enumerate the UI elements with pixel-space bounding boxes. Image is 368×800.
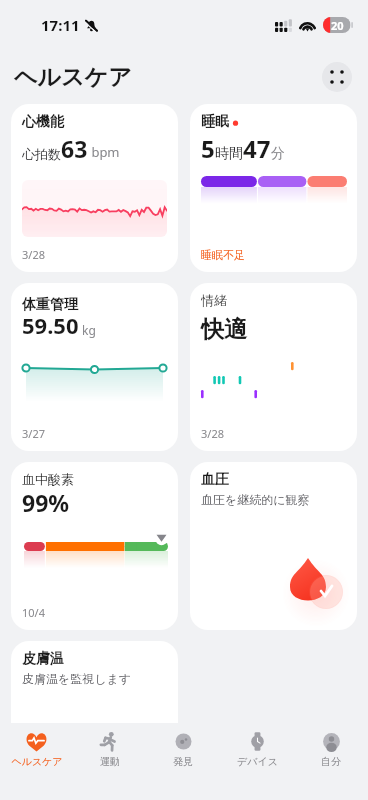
staticText: 20 <box>331 18 344 33</box>
staticText: 自分 <box>321 755 341 768</box>
staticText: 3/28 <box>22 247 45 262</box>
button[interactable]: 心機能 <box>11 104 178 272</box>
button[interactable]: 発見 <box>146 723 220 800</box>
button[interactable]: デバイス <box>220 723 294 800</box>
button[interactable]: 体重管理 <box>11 283 178 451</box>
button[interactable]: 血中酸素 <box>11 462 178 630</box>
staticText: 63 <box>61 133 88 164</box>
button[interactable]: 睡眠 <box>190 104 357 272</box>
staticText: 発見 <box>173 755 193 768</box>
staticText: 分 <box>271 145 285 163</box>
staticText: 情緒 <box>201 292 227 308</box>
staticText: 体重管理 <box>22 296 78 314</box>
staticText: 血圧 <box>201 471 229 489</box>
staticText: bpm <box>88 143 120 161</box>
staticText: 皮膚温 <box>22 650 64 668</box>
staticText: 10/4 <box>22 605 45 620</box>
staticText: kg <box>79 322 96 338</box>
button[interactable]: 情緒 <box>190 283 357 451</box>
staticText: 血圧を継続的に観察 <box>201 492 310 507</box>
button[interactable]: 皮膚温 <box>11 641 178 723</box>
staticText: 3/27 <box>22 426 45 441</box>
staticText: 3/28 <box>201 426 224 441</box>
button[interactable]: ヘルスケア <box>0 723 73 800</box>
staticText: 5 <box>201 132 215 165</box>
staticText: 心拍数 <box>22 146 61 162</box>
button[interactable]: 血圧 <box>190 462 357 630</box>
staticText: 睡眠不足 <box>201 248 245 262</box>
staticText: 47 <box>243 132 271 165</box>
staticText: 快適 <box>201 315 247 344</box>
button[interactable]: 運動 <box>73 723 146 800</box>
staticText: 皮膚温を監視します <box>22 671 132 686</box>
staticText: 心機能 <box>22 113 64 131</box>
staticText: 血中酸素 <box>22 471 74 487</box>
staticText: 運動 <box>100 755 120 768</box>
staticText: 59.50 <box>22 310 79 340</box>
staticText: 時間 <box>215 145 243 163</box>
staticText: デバイス <box>237 755 278 768</box>
staticText: ヘルスケア <box>14 63 132 92</box>
staticText: 99% <box>22 487 70 518</box>
staticText: 睡眠 <box>201 113 229 131</box>
staticText: ヘルスケア <box>11 755 63 768</box>
button[interactable]: More options <box>322 62 352 92</box>
staticText: 17:11 <box>41 15 80 35</box>
button[interactable]: 自分 <box>294 723 368 800</box>
